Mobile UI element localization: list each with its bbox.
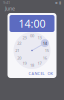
staticText: 15 <box>45 48 49 53</box>
staticText: 9:41 <box>3 0 10 5</box>
staticText: 23 <box>23 35 27 40</box>
staticText: 22 <box>17 40 21 46</box>
button[interactable]: OK <box>47 71 52 76</box>
staticText: 14 <box>43 40 47 46</box>
staticText: 21 <box>15 48 19 53</box>
button[interactable]: CANCEL <box>28 71 44 76</box>
staticText: 17 <box>37 61 41 66</box>
staticText: 00 <box>30 33 34 38</box>
staticText: OK <box>47 71 52 76</box>
staticText: 16 <box>43 55 47 60</box>
staticText: June <box>5 5 15 12</box>
staticText: 20 <box>17 55 21 60</box>
staticText: 18 <box>30 63 34 68</box>
staticText: 13 <box>37 35 41 40</box>
staticText: 19 <box>23 61 27 66</box>
staticText: ▪ ▮ <box>55 0 61 5</box>
staticText: 14:00 <box>18 16 45 31</box>
staticText: CANCEL <box>28 71 44 76</box>
